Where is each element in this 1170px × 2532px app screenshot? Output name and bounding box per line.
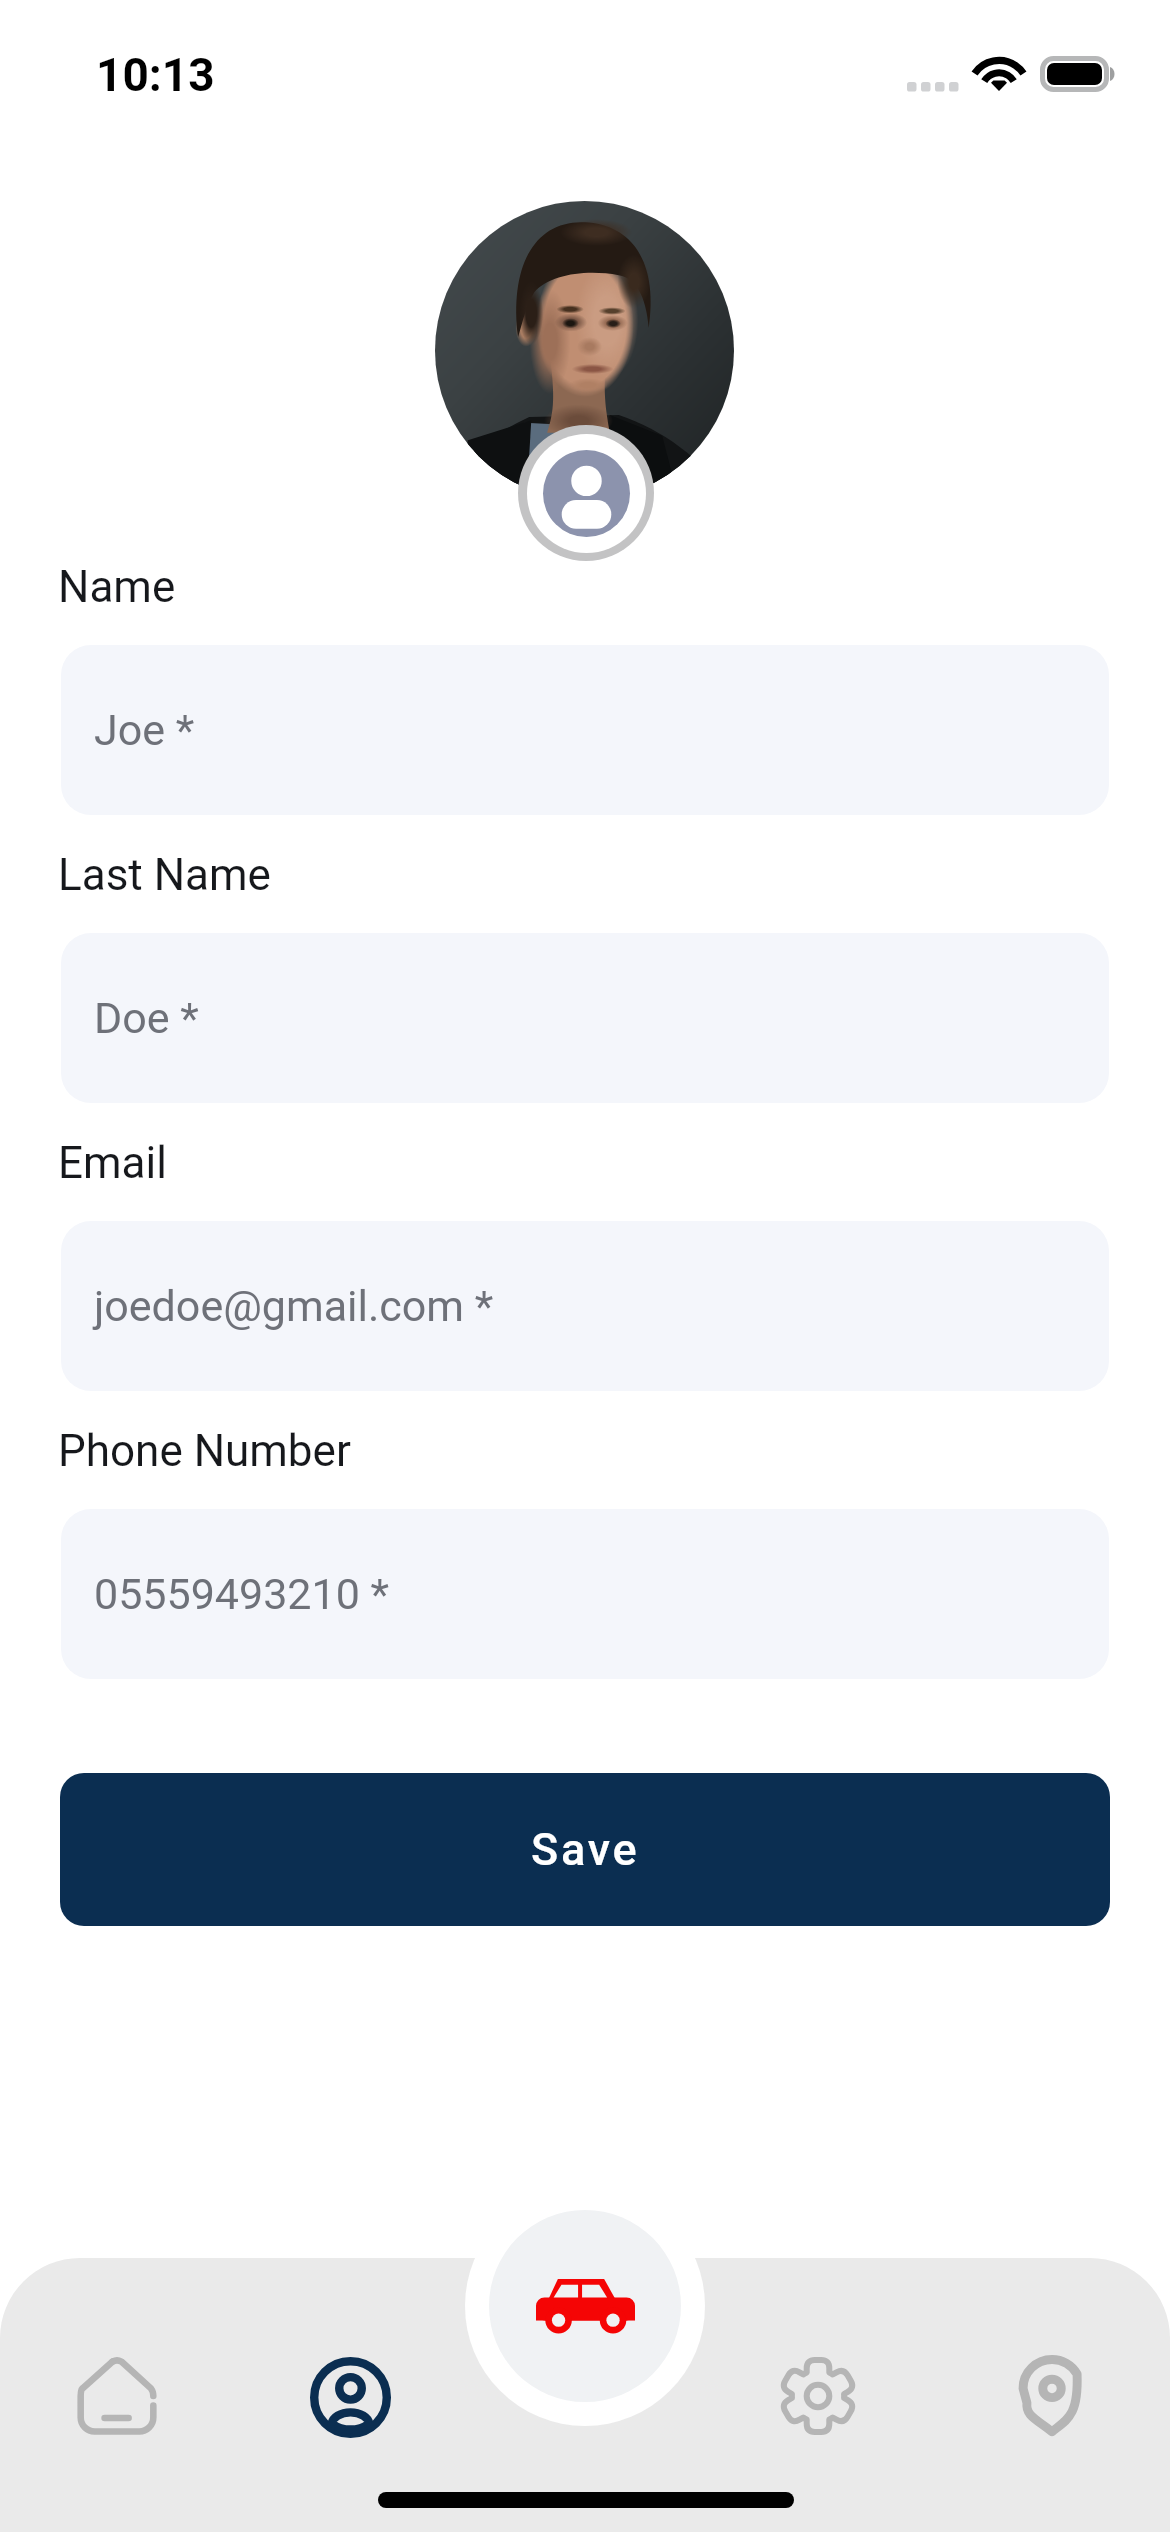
- staticText: Joe *: [94, 705, 195, 755]
- staticText: 10:13: [96, 48, 215, 102]
- button[interactable]: Joe *: [61, 645, 1109, 815]
- button[interactable]: Settings: [756, 2334, 880, 2458]
- button[interactable]: joedoe@gmail.com *: [61, 1221, 1109, 1391]
- button[interactable]: Save: [60, 1773, 1110, 1926]
- button[interactable]: Profile: [288, 2335, 412, 2459]
- button[interactable]: Doe *: [61, 933, 1109, 1103]
- staticText: Last Name: [58, 849, 271, 901]
- staticText: Name: [58, 561, 176, 613]
- staticText: 05559493210 *: [94, 1569, 390, 1619]
- staticText: joedoe@gmail.com *: [94, 1281, 494, 1331]
- staticText: Phone Number: [58, 1425, 351, 1477]
- button[interactable]: 05559493210 *: [61, 1509, 1109, 1679]
- staticText: Doe *: [94, 993, 199, 1043]
- button[interactable]: Vehicles: [465, 2186, 705, 2426]
- button[interactable]: Location: [990, 2334, 1114, 2458]
- staticText: Email: [58, 1137, 167, 1189]
- button[interactable]: Home: [55, 2334, 179, 2458]
- staticText: Save: [531, 1823, 640, 1876]
- button[interactable]: Change profile photo: [518, 425, 654, 561]
